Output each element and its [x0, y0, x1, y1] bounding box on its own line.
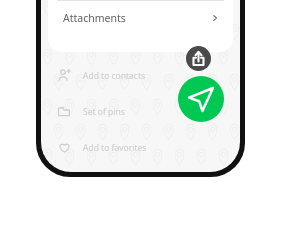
staticText: Add to favorites	[83, 142, 147, 154]
button[interactable]: Set of pins	[57, 99, 125, 124]
staticText: Add to contacts	[83, 70, 146, 82]
button[interactable]: Add to contacts	[57, 63, 146, 88]
button[interactable]: Navigate	[178, 76, 224, 122]
button[interactable]: Share	[186, 46, 211, 71]
staticText: Set of pins	[83, 106, 125, 118]
staticText: Attachments	[63, 11, 126, 25]
button[interactable]: Attachments	[48, 1, 233, 34]
button[interactable]: Add to favorites	[57, 135, 147, 160]
